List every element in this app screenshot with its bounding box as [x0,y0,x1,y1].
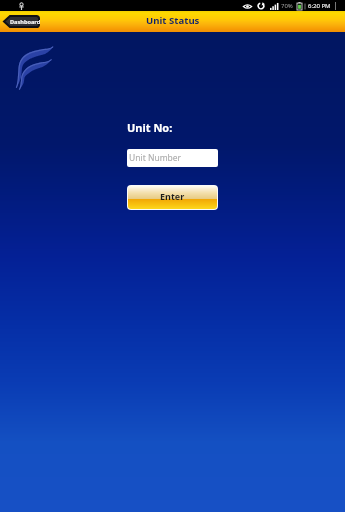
button[interactable]: Enter [128,186,217,209]
staticText: 70% [281,2,293,10]
staticText: 6:20 PM [308,2,331,10]
staticText: Dashboard [10,18,41,26]
staticText: Unit Status [146,14,200,27]
staticText: Unit No: [127,120,173,135]
staticText: Unit Number [129,152,182,164]
staticText: Enter [160,190,185,202]
button[interactable]: Back to Dashboard [3,15,40,28]
button[interactable]: Unit Number [127,149,218,167]
